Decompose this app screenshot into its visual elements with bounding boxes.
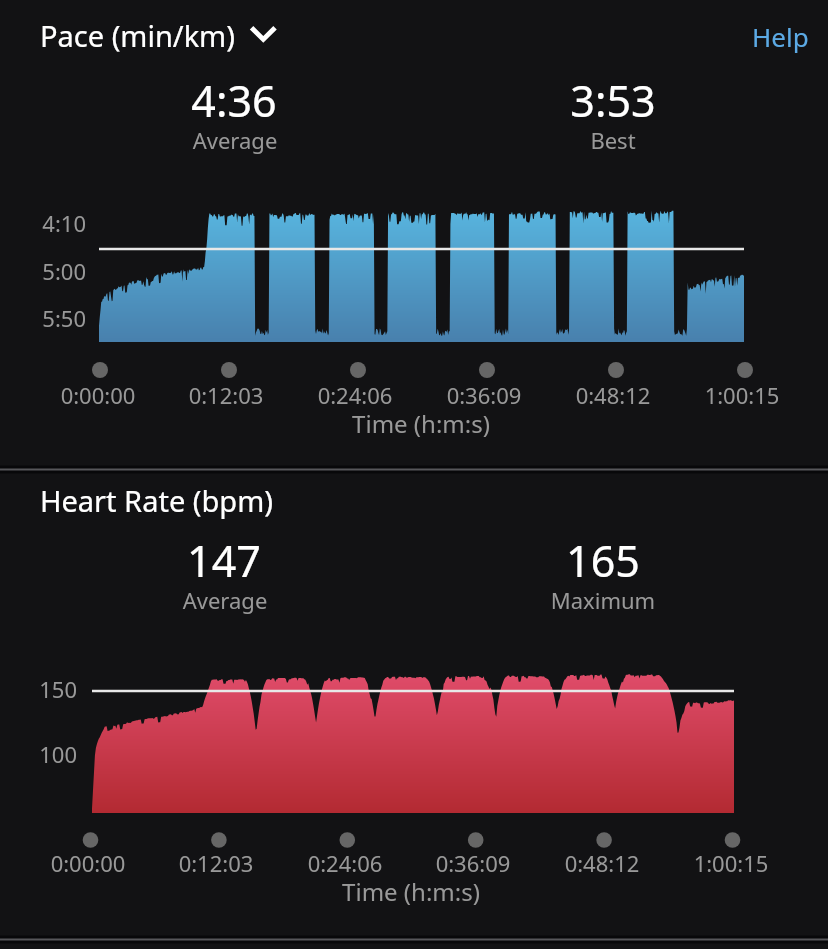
- staticText: Best: [493, 125, 733, 155]
- staticText: Pace (min/km): [40, 16, 235, 55]
- staticText: 4:10: [0, 208, 86, 238]
- staticText: Average: [105, 585, 345, 615]
- staticText: Help: [752, 19, 809, 54]
- staticText: 0:12:03: [136, 848, 296, 878]
- staticText: 0:24:06: [275, 380, 435, 410]
- staticText: 3:53: [493, 71, 733, 130]
- staticText: 5:00: [0, 256, 86, 286]
- staticText: 1:00:15: [651, 848, 811, 878]
- staticText: Time (h:m:s): [301, 407, 541, 440]
- staticText: 5:50: [0, 303, 86, 333]
- staticText: 0:36:09: [393, 848, 553, 878]
- button[interactable]: Pace (min/km): [36, 10, 283, 61]
- staticText: 150: [0, 674, 77, 704]
- staticText: 4:36: [114, 71, 354, 130]
- staticText: 0:12:03: [146, 380, 306, 410]
- staticText: 0:00:00: [8, 848, 168, 878]
- staticText: Time (h:m:s): [291, 875, 531, 908]
- staticText: 0:48:12: [522, 848, 682, 878]
- staticText: 165: [483, 531, 723, 590]
- staticText: Average: [115, 125, 355, 155]
- staticText: 0:24:06: [265, 848, 425, 878]
- button[interactable]: Help: [740, 9, 821, 64]
- staticText: 1:00:15: [662, 380, 822, 410]
- staticText: 0:48:12: [533, 380, 693, 410]
- staticText: 100: [0, 739, 77, 769]
- staticText: 0:36:09: [404, 380, 564, 410]
- staticText: Maximum: [483, 585, 723, 615]
- staticText: 147: [104, 531, 344, 590]
- staticText: Heart Rate (bpm): [40, 481, 273, 520]
- staticText: 0:00:00: [18, 380, 178, 410]
